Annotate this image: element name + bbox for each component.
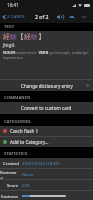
staticText: STATISTICS — [4, 150, 28, 156]
staticText: NOUN experience VERB go through, undergo… — [3, 50, 89, 60]
staticText: 16:41 — [7, 2, 19, 8]
staticText: Created — [3, 160, 19, 166]
button[interactable]: Czech flash 1 — [0, 126, 93, 136]
staticText: 200 — [22, 182, 30, 188]
staticText: Reviewed — [0, 169, 19, 179]
button[interactable]: Next card — [81, 14, 87, 20]
staticText: Never — [22, 171, 34, 177]
staticText: jingū — [3, 42, 15, 49]
button[interactable]: Add to Category... — [0, 137, 93, 147]
staticText: Add to Category... — [10, 139, 49, 145]
staticText: CATEGORIES — [4, 118, 31, 124]
button[interactable]: Previous card — [69, 14, 75, 20]
staticText: Easiness — [1, 193, 19, 199]
staticText: 2 CARDS — [7, 14, 25, 20]
staticText: 2 of 2 — [35, 13, 49, 20]
staticText: TEXT — [4, 23, 15, 29]
button[interactable]: Play audio — [57, 14, 63, 20]
button[interactable]: Change dictionary entry — [0, 80, 93, 91]
staticText: 24/01/2022 (18:43) — [22, 160, 60, 166]
staticText: 経験【経験】 — [3, 32, 45, 41]
button[interactable]: 2 CARDS — [0, 14, 27, 20]
staticText: Score — [7, 182, 19, 188]
staticText: Change dictionary entry — [21, 83, 73, 89]
staticText: COMMANDS — [4, 94, 31, 100]
staticText: Czech flash 1 — [10, 128, 39, 134]
staticText: Convert to custom card — [21, 105, 72, 111]
button[interactable]: Convert to custom card — [0, 102, 93, 114]
